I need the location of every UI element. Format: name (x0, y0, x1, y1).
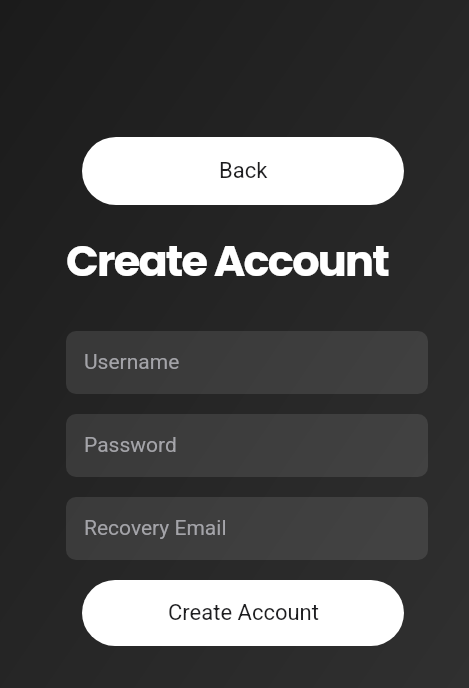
button[interactable]: Username input field (66, 331, 428, 394)
staticText: Create Account (66, 231, 388, 291)
staticText: Back (219, 158, 268, 184)
staticText: Recovery Email (84, 516, 227, 541)
button[interactable]: Recovery Email input field (66, 497, 428, 560)
button[interactable]: Back (82, 137, 404, 205)
staticText: Username (84, 350, 180, 375)
button[interactable]: Create Account (82, 580, 404, 646)
button[interactable]: Password input field (66, 414, 428, 477)
staticText: Password (84, 433, 177, 458)
staticText: Create Account (168, 600, 319, 626)
